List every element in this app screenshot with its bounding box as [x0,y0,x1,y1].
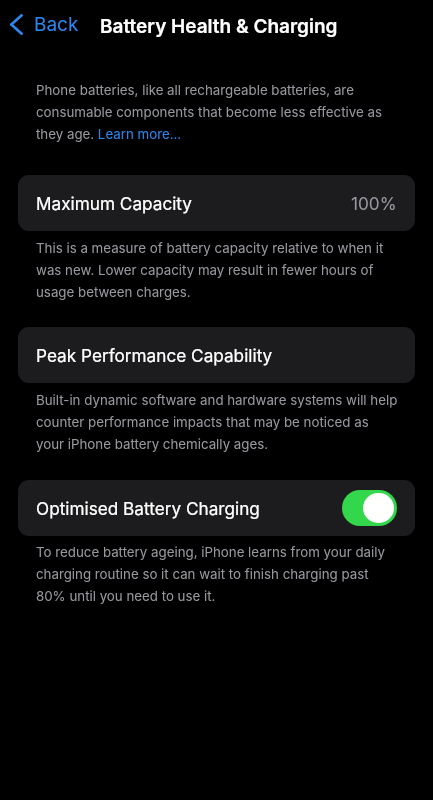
staticText: Peak Performance Capability [36,345,273,366]
button[interactable]: Back [4,7,85,45]
staticText: Optimised Battery Charging [36,498,260,519]
button[interactable]: Optimised Battery Charging toggle [342,490,397,526]
staticText: Battery Health & Charging [100,15,338,38]
staticText: Maximum Capacity [36,193,192,214]
staticText: Built-in dynamic software and hardware s… [36,392,398,452]
staticText: To reduce battery ageing, iPhone learns … [36,544,398,604]
staticText: 100% [351,193,397,214]
staticText: Phone batteries, like all rechargeable b… [36,82,398,142]
staticText: This is a measure of battery capacity re… [36,240,398,300]
button[interactable]: Peak Performance Capability [18,327,415,383]
button[interactable]: Optimised Battery Charging [18,480,415,536]
staticText: Back [34,13,79,36]
button[interactable]: Maximum Capacity [18,175,415,231]
